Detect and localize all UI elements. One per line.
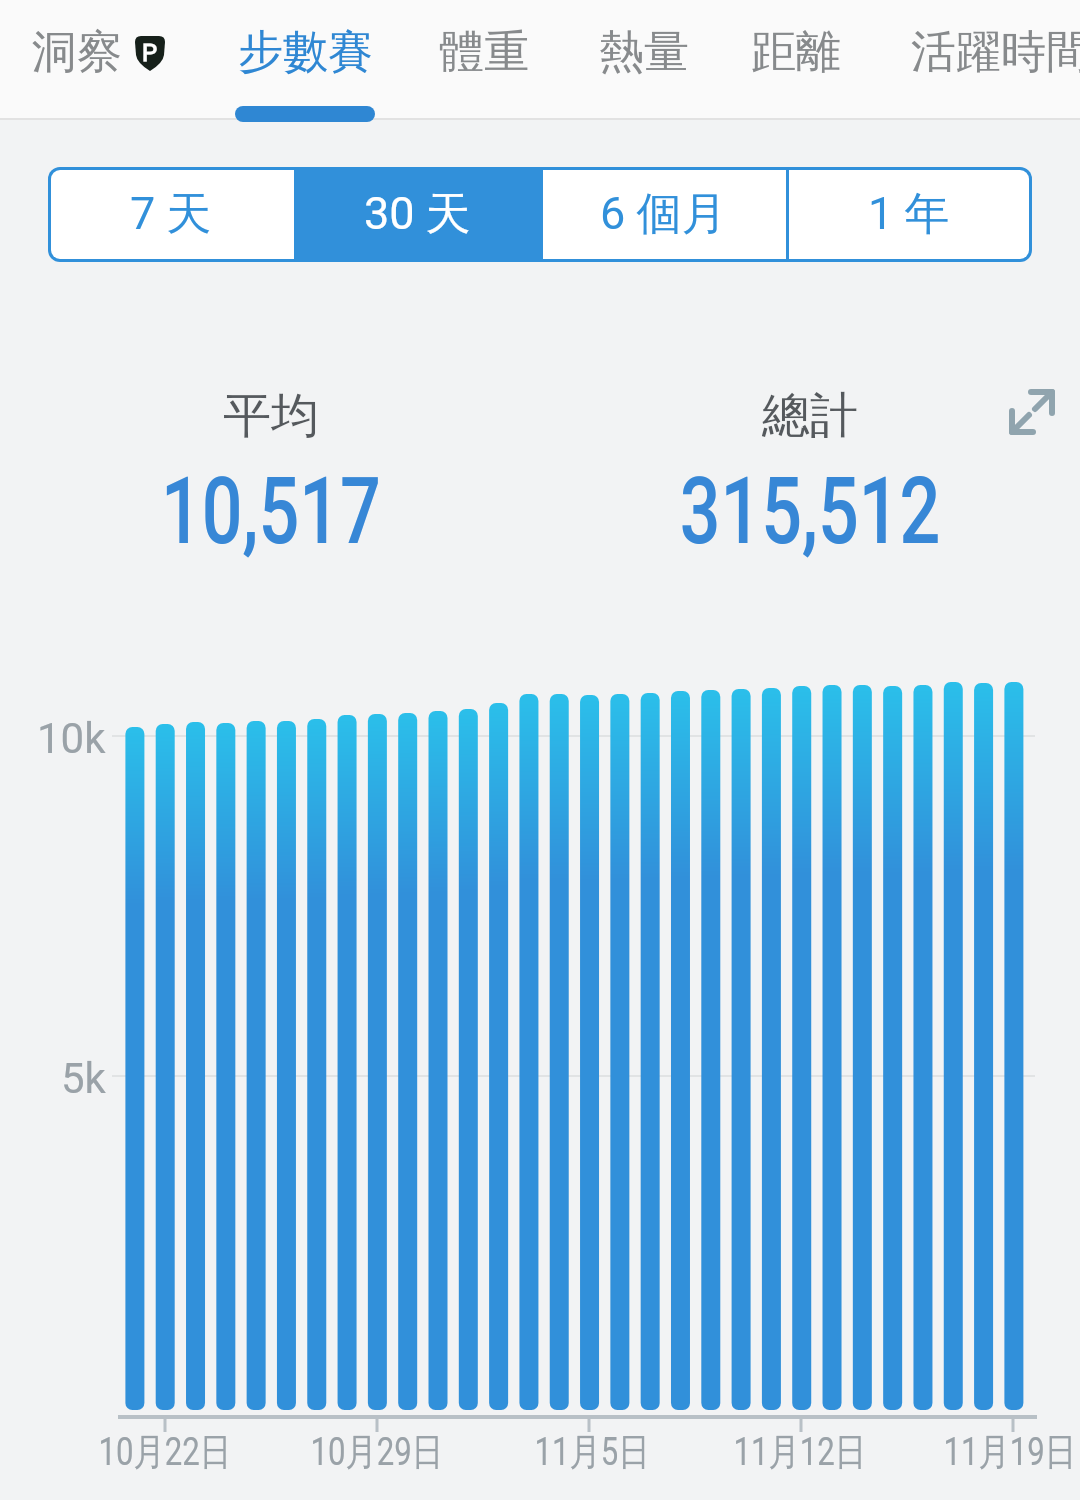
staticText: 洞察 [32, 24, 122, 81]
staticText: P [142, 39, 158, 67]
staticText: 11月19日 [944, 1428, 1076, 1476]
button[interactable]: 距離 [749, 0, 843, 104]
staticText: 1 年 [868, 186, 950, 243]
button[interactable]: 洞察 [30, 0, 124, 104]
staticText: 315,512 [680, 458, 940, 558]
staticText: 10月22日 [99, 1428, 231, 1476]
staticText: 活躍時間 [911, 24, 1080, 81]
staticText: 6 個月 [600, 186, 727, 243]
button[interactable]: 體重 [437, 0, 531, 104]
button[interactable] [1004, 384, 1060, 440]
button[interactable]: 7 天 [48, 167, 294, 262]
staticText: 30 天 [364, 186, 471, 243]
button[interactable]: 30 天 [294, 167, 540, 262]
staticText: 距離 [751, 24, 841, 81]
staticText: 11月12日 [734, 1428, 866, 1476]
staticText: 11月5日 [535, 1428, 650, 1476]
staticText: 10,517 [161, 458, 381, 558]
staticText: 熱量 [599, 24, 689, 81]
staticText: 7 天 [130, 186, 212, 243]
staticText: 10月29日 [311, 1428, 443, 1476]
staticText: 5k [61, 1054, 106, 1098]
staticText: 體重 [439, 24, 529, 81]
staticText: 步數賽 [238, 24, 373, 81]
button[interactable]: 熱量 [597, 0, 691, 104]
button[interactable]: 活躍時間 [907, 0, 1080, 104]
staticText: 總計 [762, 386, 858, 438]
button[interactable]: 6 個月 [540, 167, 786, 262]
staticText: 平均 [223, 386, 319, 438]
staticText: 10k [37, 714, 106, 758]
button[interactable]: 1 年 [786, 167, 1032, 262]
button[interactable]: 步數賽 [235, 0, 376, 104]
